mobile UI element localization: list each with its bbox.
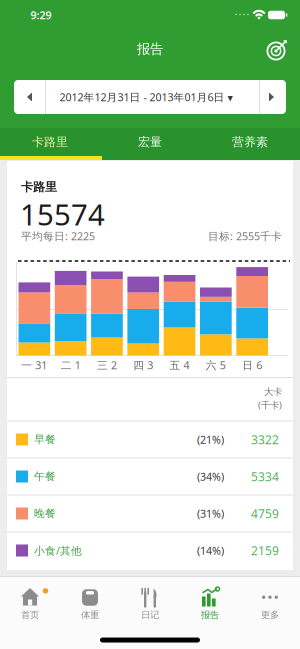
staticText: 报告 bbox=[201, 609, 219, 621]
staticText: (14%) bbox=[197, 543, 224, 558]
staticText: (21%) bbox=[197, 432, 224, 447]
staticText: 四 3 bbox=[133, 358, 153, 372]
staticText: 宏量 bbox=[138, 135, 162, 149]
staticText: 小食/其他 bbox=[34, 543, 82, 558]
staticText: 首页 bbox=[21, 609, 39, 621]
staticText: 一 31 bbox=[21, 358, 47, 372]
staticText: 2012年12月31日 - 2013年01月6日 ▾ bbox=[59, 90, 232, 104]
staticText: 2159 bbox=[251, 542, 279, 558]
staticText: 体重 bbox=[81, 609, 99, 621]
staticText: 六 5 bbox=[206, 358, 226, 372]
staticText: (31%) bbox=[197, 506, 224, 521]
staticText: 卡路里 bbox=[21, 180, 57, 194]
staticText: 9:29 bbox=[30, 8, 51, 22]
staticText: (千卡) bbox=[258, 399, 282, 411]
staticText: 报告 bbox=[137, 41, 163, 57]
staticText: 平均每日: 2225 bbox=[21, 229, 95, 243]
staticText: 五 4 bbox=[169, 358, 189, 372]
staticText: 4759 bbox=[251, 505, 279, 521]
staticText: 营养素 bbox=[232, 135, 268, 149]
staticText: 二 1 bbox=[61, 358, 81, 372]
staticText: 大卡 bbox=[264, 386, 282, 398]
staticText: 更多 bbox=[261, 609, 279, 621]
staticText: 三 2 bbox=[97, 358, 117, 372]
staticText: 早餐 bbox=[34, 433, 56, 446]
staticText: 卡路里 bbox=[32, 135, 68, 149]
staticText: 15574 bbox=[20, 194, 105, 233]
staticText: 日 6 bbox=[242, 358, 262, 372]
staticText: 晚餐 bbox=[34, 507, 56, 520]
staticText: 日记 bbox=[141, 609, 159, 621]
staticText: 3322 bbox=[251, 431, 279, 447]
staticText: 5334 bbox=[251, 468, 279, 484]
staticText: 午餐 bbox=[34, 470, 56, 483]
staticText: (34%) bbox=[197, 469, 224, 484]
staticText: 目标: 2555千卡 bbox=[208, 229, 282, 243]
